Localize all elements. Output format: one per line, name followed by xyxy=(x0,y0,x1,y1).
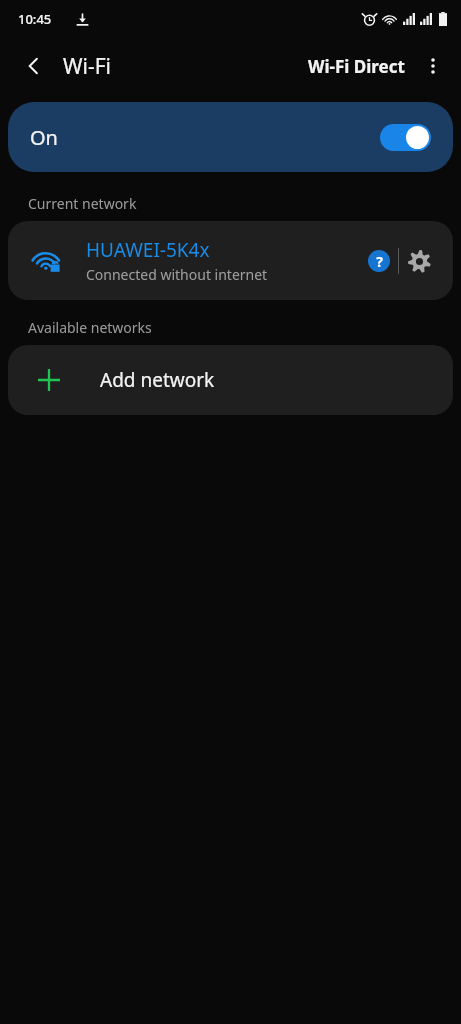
button[interactable]: On xyxy=(8,102,453,172)
staticText: HUAWEI-5K4x xyxy=(86,237,210,263)
button[interactable]: More options xyxy=(415,48,451,84)
button[interactable]: Wi-Fi Direct xyxy=(304,51,409,82)
staticText: Wi-Fi Direct xyxy=(308,55,405,78)
button[interactable]: Network information xyxy=(360,242,398,280)
staticText: Add network xyxy=(100,367,215,393)
staticText: ? xyxy=(376,252,383,271)
staticText: Current network xyxy=(28,194,137,213)
button[interactable]: Add network xyxy=(8,345,453,415)
button[interactable]: Back xyxy=(18,50,50,82)
staticText: Wi-Fi xyxy=(63,52,112,81)
staticText: On xyxy=(30,124,58,151)
staticText: 10:45 xyxy=(18,10,52,28)
staticText: Available networks xyxy=(28,318,152,337)
staticText: Connected without internet xyxy=(86,265,268,284)
button[interactable]: Network settings xyxy=(399,241,439,281)
button[interactable]: HUAWEI-5K4x xyxy=(8,221,453,300)
